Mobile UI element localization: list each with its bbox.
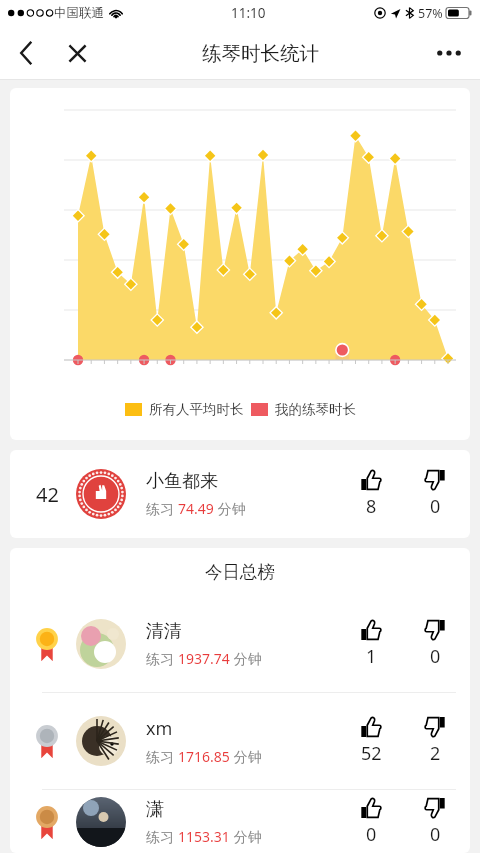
staticText: xm (146, 716, 173, 741)
button[interactable]: 潇 (24, 790, 452, 853)
staticText: 52 (361, 741, 382, 766)
staticText: 42 (36, 481, 59, 508)
button[interactable]: Dislike (418, 469, 452, 519)
staticText: 0 (366, 822, 377, 847)
staticText: 0 (430, 822, 441, 847)
button[interactable]: 42 (10, 450, 470, 538)
staticText: 分钟 (214, 499, 246, 518)
staticText: 练习 (146, 499, 178, 518)
staticText: 分钟 (230, 827, 262, 846)
staticText: 1937.74 (178, 649, 230, 668)
button[interactable]: xm (24, 693, 452, 789)
staticText: 清清 (146, 620, 182, 643)
staticText: 2 (430, 741, 441, 766)
staticText: 11:10 (231, 4, 266, 22)
button[interactable]: More options (418, 26, 480, 80)
button[interactable]: Dislike (418, 619, 452, 669)
staticText: 1716.85 (178, 747, 230, 766)
staticText: 中国联通 (54, 5, 104, 21)
staticText: 所有人平均时长 (149, 401, 244, 418)
staticText: 小鱼都来 (146, 470, 218, 493)
staticText: 潇 (146, 798, 164, 821)
staticText: 57% (418, 5, 443, 22)
staticText: 分钟 (230, 649, 262, 668)
staticText: 练习 (146, 827, 178, 846)
staticText: 练习 (146, 649, 178, 668)
staticText: 8 (366, 494, 377, 519)
button[interactable]: Like (354, 619, 388, 669)
button[interactable]: Close (52, 26, 102, 80)
button[interactable]: Back (0, 26, 52, 80)
button[interactable]: Dislike (418, 797, 452, 847)
staticText: 74.49 (178, 499, 214, 518)
button[interactable]: Like (354, 469, 388, 519)
staticText: 练琴时长统计 (202, 41, 319, 66)
staticText: 1153.31 (178, 827, 230, 846)
staticText: 分钟 (230, 747, 262, 766)
button[interactable]: 清清 (24, 596, 452, 692)
staticText: 0 (430, 644, 441, 669)
button[interactable]: Like (354, 797, 388, 847)
button[interactable]: Dislike (418, 716, 452, 766)
staticText: 1 (366, 644, 377, 669)
staticText: 练习 (146, 747, 178, 766)
button[interactable]: Like (354, 716, 388, 766)
staticText: 我的练琴时长 (275, 401, 356, 418)
staticText: 0 (430, 494, 441, 519)
staticText: 今日总榜 (205, 561, 275, 583)
